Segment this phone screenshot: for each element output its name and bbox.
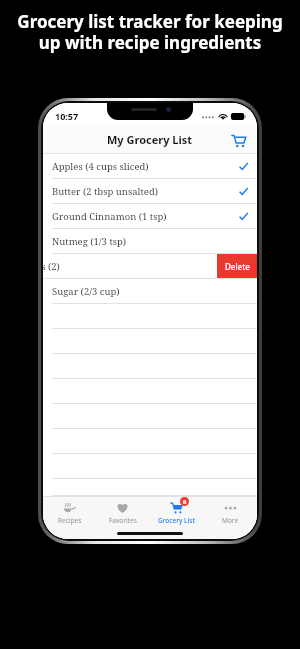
button[interactable]: Butter (2 tbsp unsalted): [43, 179, 257, 204]
button[interactable]: More: [203, 497, 257, 529]
button[interactable]: Recipes: [43, 497, 96, 529]
staticText: Recipes: [58, 516, 82, 525]
staticText: Nutmeg (1/3 tsp): [52, 235, 127, 248]
button[interactable]: Ground Cinnamon (1 tsp): [43, 204, 257, 229]
staticText: 10:57: [55, 110, 79, 122]
button[interactable]: Apples (4 cups sliced): [43, 154, 257, 179]
staticText: More: [222, 516, 239, 525]
staticText: Grocery List: [158, 516, 195, 525]
button[interactable]: Nutmeg (1/3 tsp): [43, 229, 257, 254]
button[interactable]: Favorites: [96, 497, 149, 529]
staticText: 6: [183, 498, 187, 506]
button[interactable]: Sugar (2/3 cup): [43, 279, 257, 304]
button[interactable]: Delete: [217, 254, 257, 279]
staticText: Delete: [225, 261, 250, 272]
staticText: Eggs (2): [43, 260, 60, 273]
button[interactable]: 6: [149, 497, 203, 529]
staticText: Butter (2 tbsp unsalted): [52, 185, 159, 198]
staticText: My Grocery List: [107, 132, 193, 147]
staticText: Favorites: [109, 516, 137, 525]
button[interactable]: Shopping cart: [225, 127, 251, 153]
staticText: Ground Cinnamon (1 tsp): [52, 210, 167, 223]
staticText: Apples (4 cups sliced): [52, 160, 149, 173]
staticText: Sugar (2/3 cup): [52, 285, 120, 298]
staticText: Grocery list tracker for keeping up with…: [12, 10, 288, 54]
